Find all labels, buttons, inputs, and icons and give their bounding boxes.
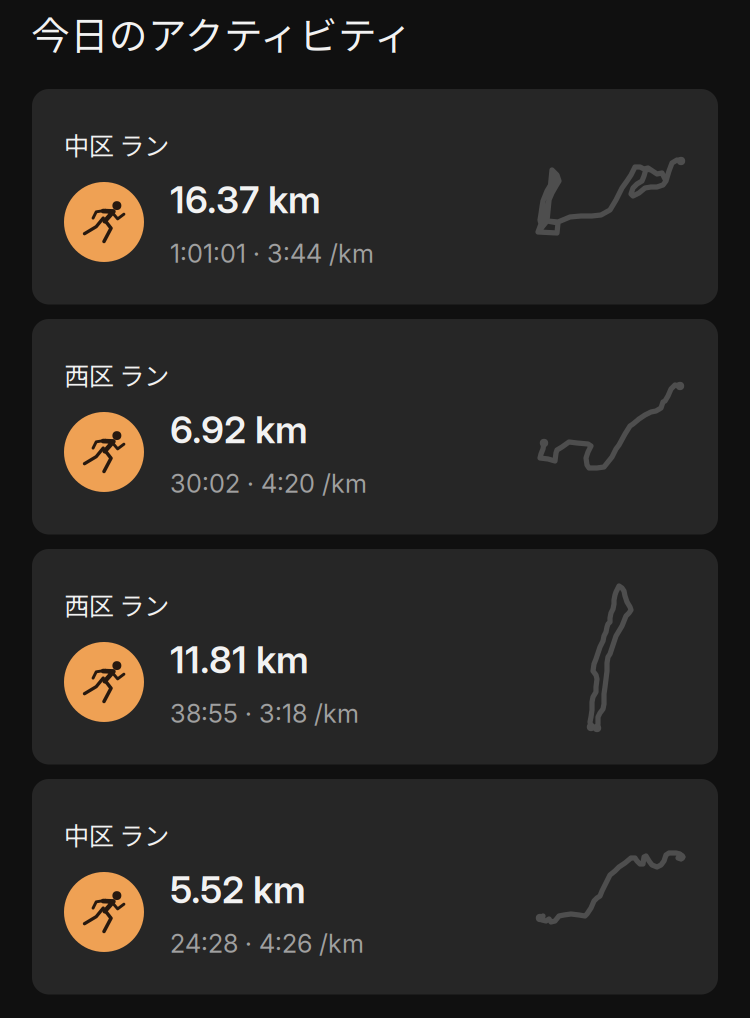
staticText: 6.92 km [170,407,308,452]
staticText: 24:28 · 4:26 /km [170,928,364,959]
button[interactable]: 西区 ラン, 11.81 km, 38:55 · 3:18 /km [32,549,718,764]
staticText: 西区 [64,356,114,393]
staticText: ラン [119,126,169,163]
staticText: ラン [119,816,169,853]
button[interactable]: 西区 ラン, 6.92 km, 30:02 · 4:20 /km [32,319,718,534]
staticText: 1:01:01 · 3:44 /km [170,238,374,269]
button[interactable]: 中区 ラン, 5.52 km, 24:28 · 4:26 /km [32,779,718,994]
staticText: 西区 [64,586,114,623]
staticText: 5.52 km [170,867,306,912]
staticText: 30:02 · 4:20 /km [170,468,367,499]
staticText: 中区 [64,126,114,163]
staticText: 16.37 km [170,177,321,222]
staticText: 38:55 · 3:18 /km [170,698,359,729]
button[interactable]: 中区 ラン, 16.37 km, 1:01:01 · 3:44 /km [32,89,718,304]
staticText: 今日のアクティビティ [31,5,413,61]
staticText: ラン [119,586,169,623]
staticText: 11.81 km [170,637,309,682]
staticText: 中区 [64,816,114,853]
staticText: ラン [119,356,169,393]
